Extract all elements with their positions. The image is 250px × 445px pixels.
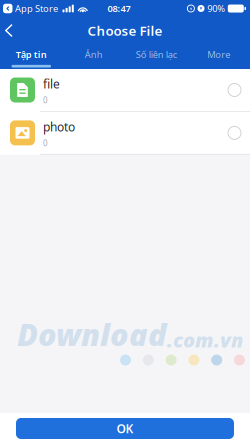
button[interactable]: file	[0, 69, 250, 111]
staticText: Choose File	[87, 22, 162, 39]
staticText: .com.vn	[167, 326, 243, 353]
staticText: photo	[43, 119, 75, 135]
button[interactable]: Tập tin	[0, 44, 62, 69]
staticText: 08:47	[107, 2, 130, 15]
staticText: Tập tin	[16, 48, 47, 61]
button[interactable]: OK	[16, 418, 234, 439]
staticText: Ảnh	[85, 48, 103, 61]
staticText: 0	[43, 95, 48, 105]
staticText: More	[207, 48, 230, 61]
button[interactable]: Back to App Store	[3, 4, 12, 13]
staticText: 90%	[207, 2, 225, 15]
staticText: OK	[116, 420, 133, 436]
staticText: Số liên lạc	[136, 48, 177, 61]
staticText: 0	[43, 138, 48, 148]
button[interactable]: photo	[0, 112, 250, 154]
staticText: App Store	[15, 2, 58, 15]
staticText: Download	[17, 314, 167, 354]
staticText: file	[43, 76, 60, 92]
button[interactable]: More	[187, 44, 250, 69]
button[interactable]: Back	[0, 19, 20, 42]
button[interactable]: Số liên lạc	[125, 44, 187, 69]
button[interactable]: Ảnh	[62, 44, 125, 69]
